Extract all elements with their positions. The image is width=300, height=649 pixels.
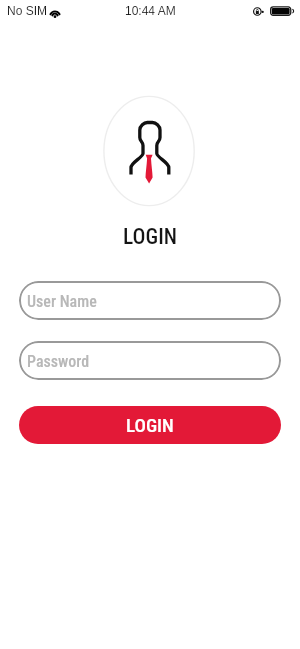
button[interactable]: User Name [19,281,281,320]
staticText: LOGIN [126,414,174,436]
staticText: LOGIN [0,224,300,249]
staticText: 10:44 AM [125,4,176,17]
staticText: User Name [27,292,97,311]
staticText: Password [27,352,90,371]
button[interactable]: LOGIN [19,406,281,444]
staticText: No SIM [7,4,48,17]
button[interactable]: Password [19,341,281,380]
